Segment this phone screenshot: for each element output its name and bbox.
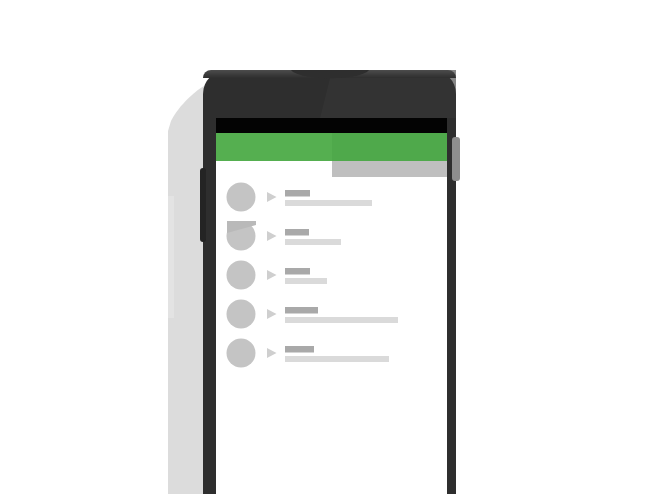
button[interactable]: List item 2 xyxy=(216,217,447,256)
button[interactable]: List item 1 xyxy=(216,178,447,217)
button[interactable]: List item 3 xyxy=(216,256,447,295)
button[interactable]: List item 4 xyxy=(216,295,447,334)
button[interactable]: List item 5 xyxy=(216,334,447,373)
